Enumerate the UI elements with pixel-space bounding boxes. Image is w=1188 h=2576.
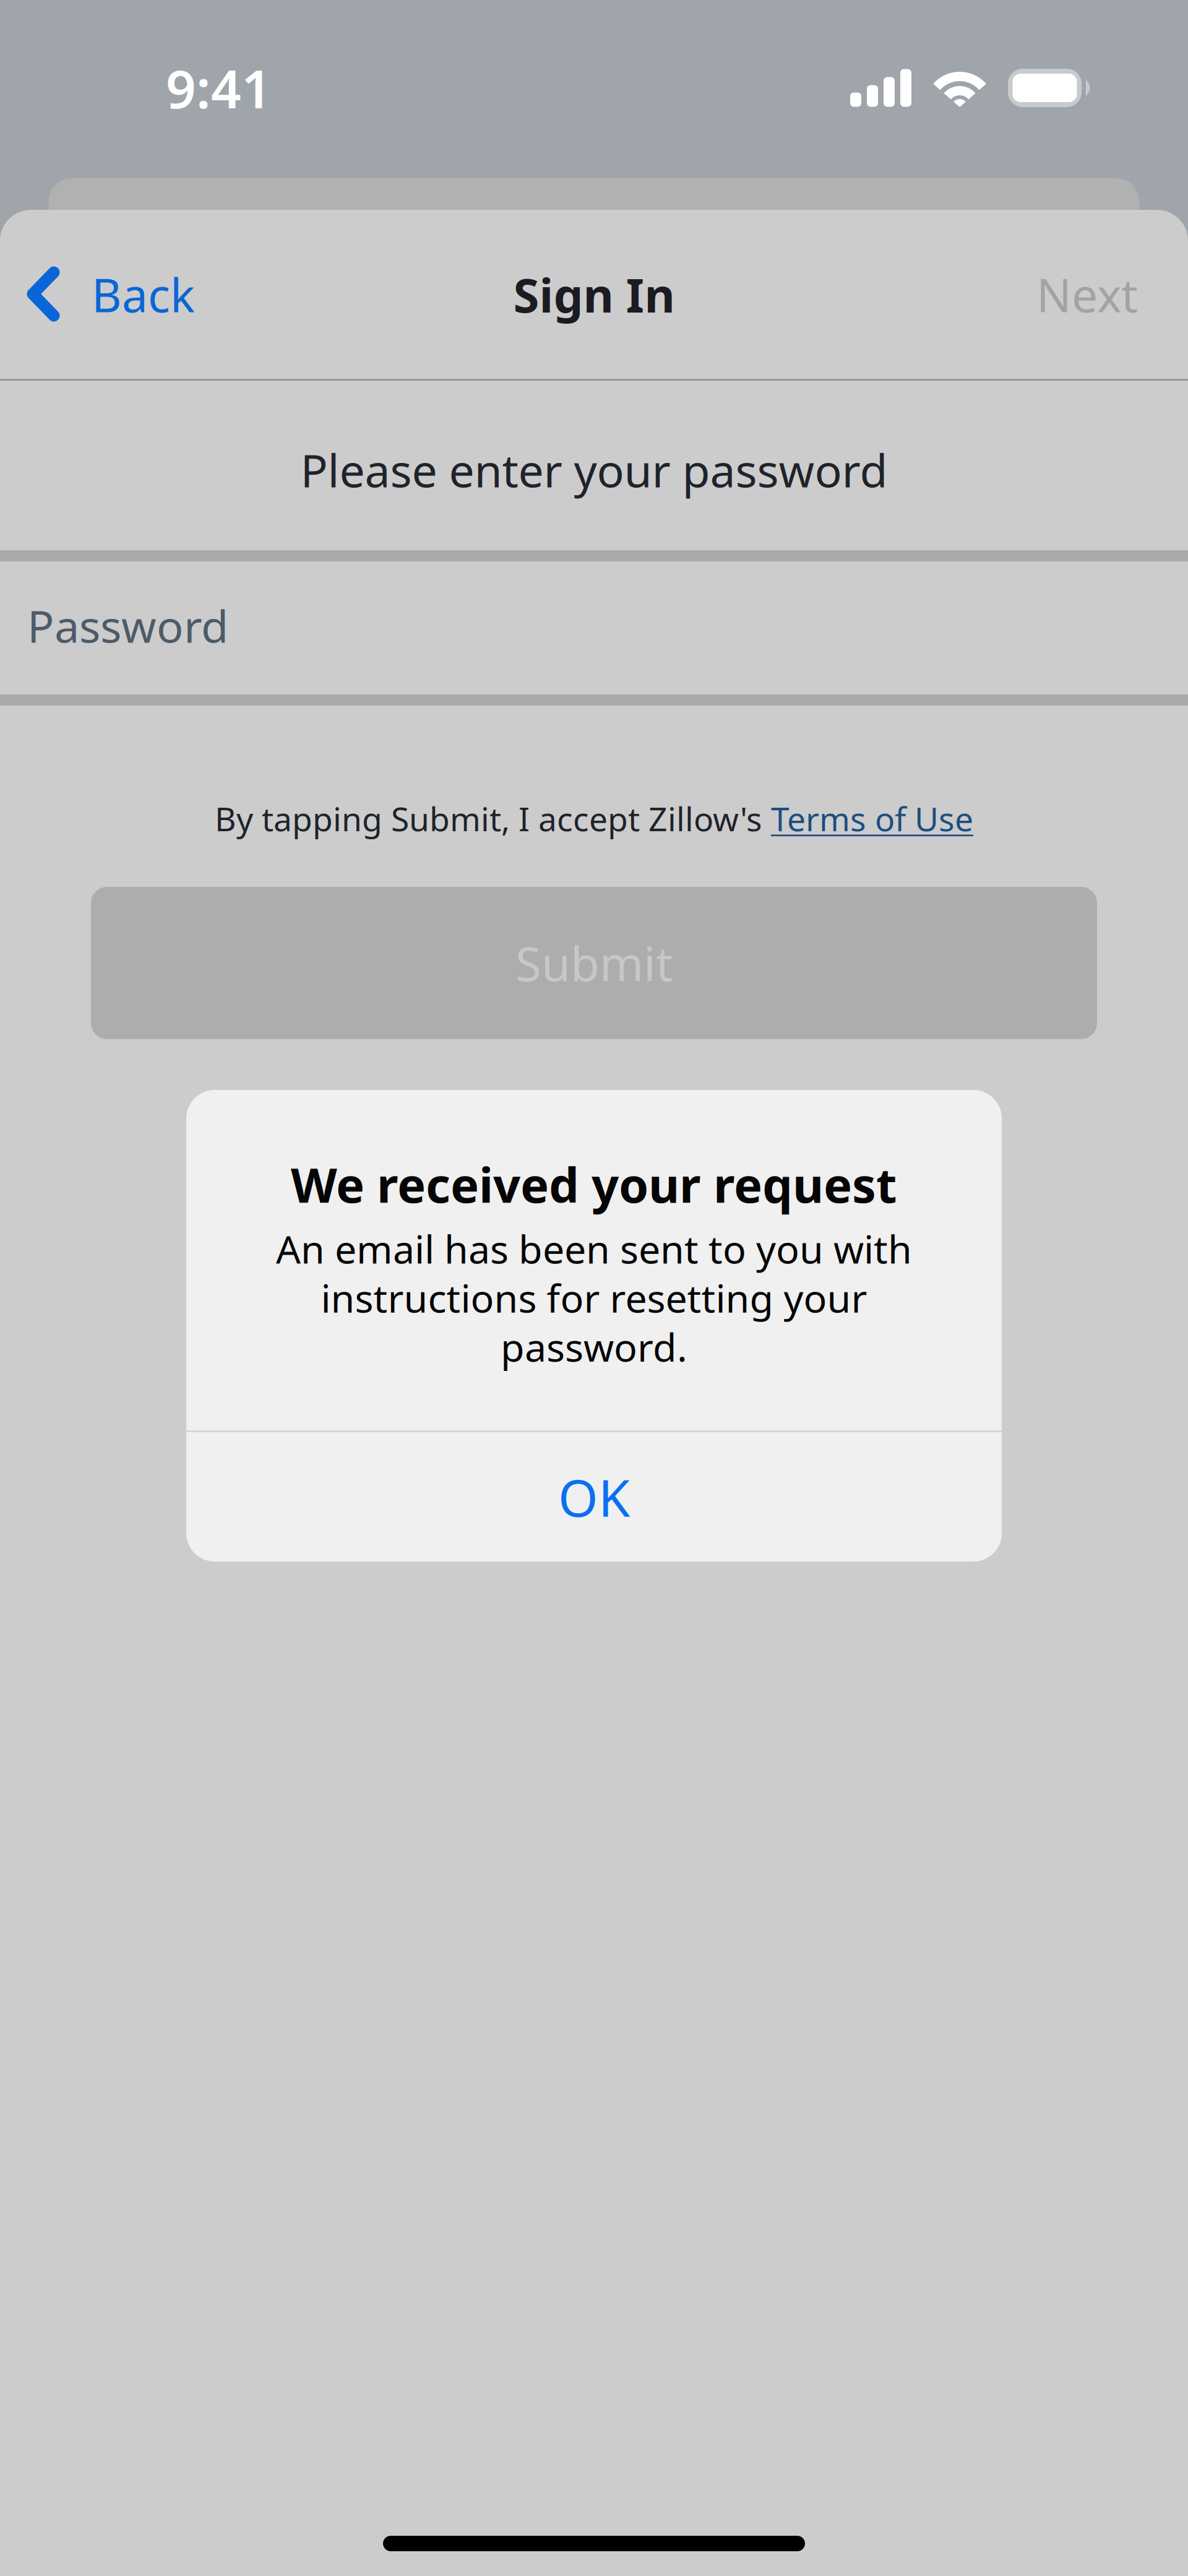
staticText: Back [92, 264, 195, 325]
staticText: We received your request [291, 1152, 897, 1216]
staticText: Next [1036, 264, 1138, 325]
staticText: Please enter your password [300, 440, 888, 500]
staticText: An email has been sent to you with [276, 1223, 912, 1274]
staticText: Password [27, 596, 228, 655]
button[interactable]: Next [1009, 236, 1188, 353]
staticText: 9:41 [166, 53, 272, 123]
button[interactable]: OK [186, 1432, 1002, 1562]
staticText: instructions for resetting your [321, 1272, 867, 1323]
staticText: Sign In [513, 263, 675, 325]
staticText: By tapping Submit, I accept Zillow's [215, 797, 771, 840]
staticText: Submit [515, 932, 673, 994]
staticText: OK [558, 1463, 630, 1531]
button[interactable]: Terms of Use [771, 797, 973, 840]
button[interactable]: Back [0, 236, 216, 353]
staticText: password. [501, 1321, 687, 1372]
staticText: Terms of Use [771, 797, 973, 840]
